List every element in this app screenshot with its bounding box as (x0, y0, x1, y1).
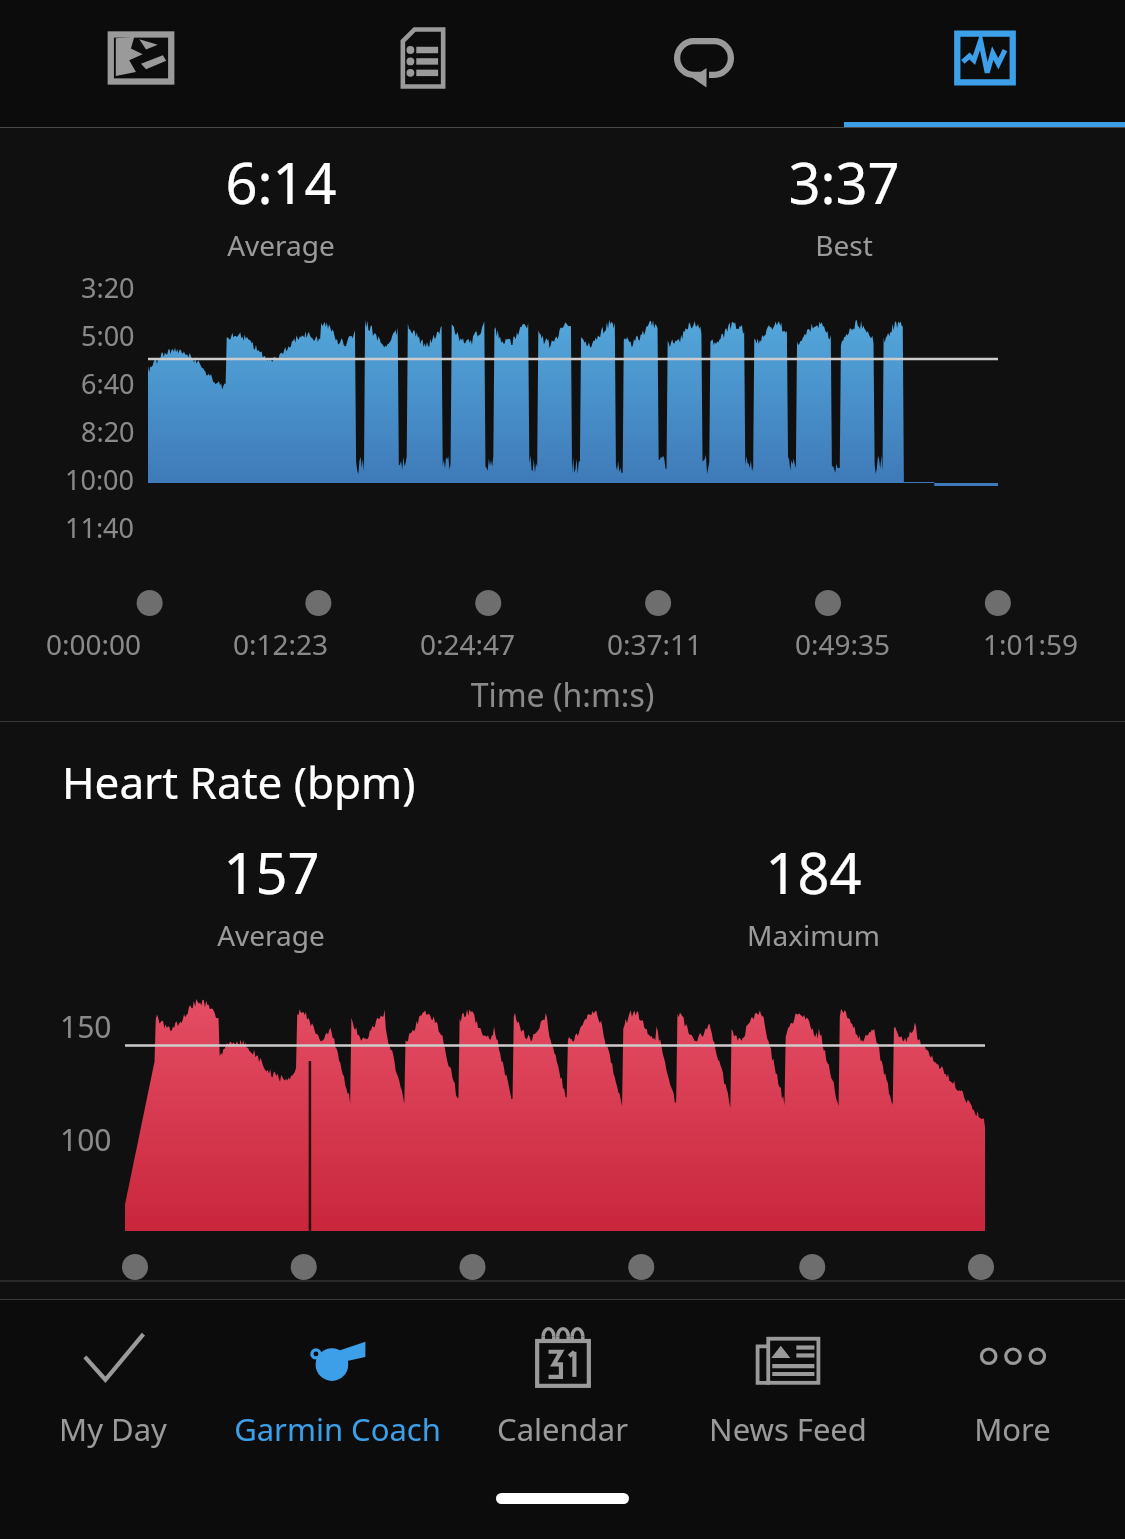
staticText: Garmin Coach (234, 1408, 441, 1450)
staticText: Calendar (497, 1408, 628, 1450)
button[interactable]: News Feed (675, 1300, 900, 1470)
staticText: 5:00 (81, 317, 135, 354)
staticText: 157 (223, 834, 320, 910)
staticText: My Day (59, 1408, 167, 1450)
staticText: Average (227, 226, 335, 264)
staticText: Heart Rate (bpm) (62, 752, 416, 812)
staticText: 0:24:47 (420, 625, 516, 663)
staticText: 3:37 (788, 144, 900, 220)
staticText: 0:12:23 (233, 625, 329, 663)
staticText: 150 (60, 1006, 112, 1047)
button[interactable]: Map (0, 0, 282, 127)
staticText: 184 (765, 834, 862, 910)
button[interactable]: Laps (563, 0, 844, 127)
staticText: 6:14 (225, 144, 337, 220)
staticText: 1:01:59 (983, 625, 1079, 663)
staticText: Average (217, 916, 325, 954)
staticText: Best (815, 226, 873, 264)
staticText: Time (h:m:s) (0, 673, 1125, 717)
button[interactable]: Calendar (450, 1300, 675, 1470)
staticText: 11:40 (65, 509, 135, 546)
staticText: 10:00 (65, 461, 135, 498)
button[interactable]: More (900, 1300, 1125, 1470)
button[interactable]: Details (282, 0, 563, 127)
staticText: 100 (60, 1119, 112, 1160)
staticText: 3:20 (81, 269, 135, 306)
button[interactable]: Charts (844, 0, 1125, 127)
staticText: More (974, 1408, 1051, 1450)
staticText: 0:00:00 (46, 625, 142, 663)
staticText: 0:37:11 (607, 625, 703, 663)
staticText: Maximum (747, 916, 880, 954)
staticText: 0:49:35 (795, 625, 891, 663)
staticText: News Feed (709, 1408, 867, 1450)
staticText: 6:40 (81, 365, 135, 402)
button[interactable]: Garmin Coach (225, 1300, 450, 1470)
button[interactable]: My Day (0, 1300, 225, 1470)
staticText: 8:20 (81, 413, 135, 450)
